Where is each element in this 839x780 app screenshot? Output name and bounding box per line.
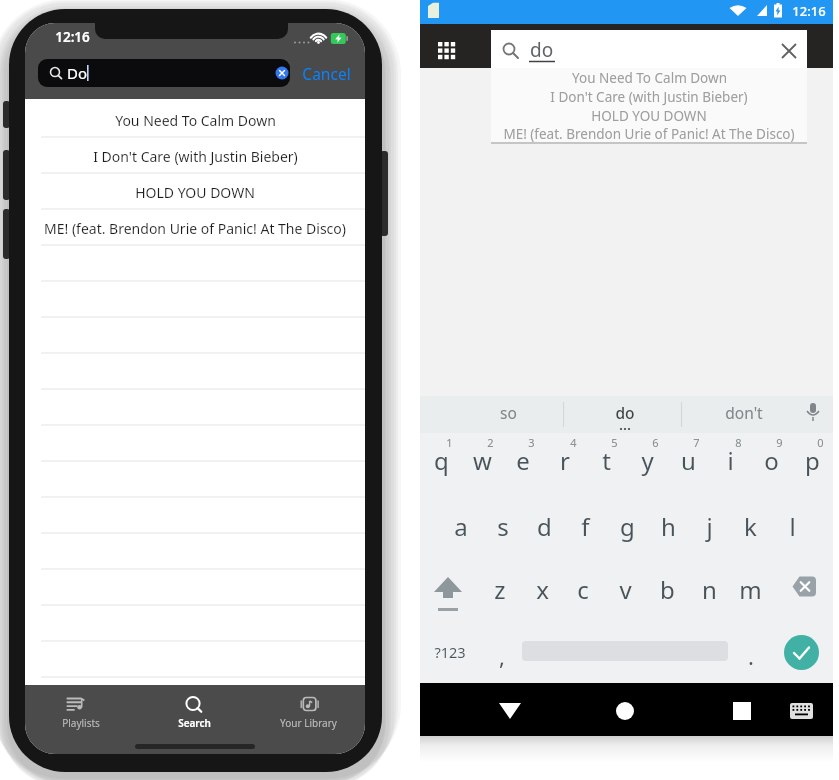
- button[interactable]: Playlists: [50, 687, 112, 733]
- button[interactable]: q: [421, 440, 461, 480]
- button[interactable]: .: [731, 636, 771, 676]
- button[interactable]: l: [772, 506, 812, 546]
- staticText: do: [615, 402, 635, 423]
- staticText: r: [560, 444, 570, 477]
- button[interactable]: HOLD YOU DOWN: [25, 176, 365, 208]
- button[interactable]: i: [710, 440, 750, 480]
- staticText: l: [789, 510, 796, 543]
- staticText: Playlists: [62, 716, 100, 730]
- button[interactable]: r: [545, 440, 585, 480]
- button[interactable]: m: [730, 569, 770, 609]
- button[interactable]: k: [730, 506, 770, 546]
- button[interactable]: HOLD YOU DOWN: [491, 107, 807, 125]
- staticText: 6: [652, 435, 659, 450]
- button[interactable]: p: [792, 440, 832, 480]
- button[interactable]: ?123: [428, 632, 472, 672]
- button[interactable]: I Don't Care (with Justin Bieber): [491, 88, 807, 106]
- staticText: 9: [776, 435, 783, 450]
- staticText: 5: [611, 435, 618, 450]
- button[interactable]: ME! (feat. Brendon Urie of Panic! At The…: [25, 212, 365, 244]
- staticText: ME! (feat. Brendon Urie of Panic! At The…: [503, 125, 795, 143]
- button[interactable]: z: [480, 569, 520, 609]
- staticText: You Need To Calm Down: [115, 111, 276, 130]
- staticText: j: [706, 510, 713, 543]
- staticText: p: [805, 444, 820, 477]
- staticText: do: [530, 37, 554, 63]
- button[interactable]: do: [595, 399, 655, 425]
- staticText: s: [497, 510, 509, 543]
- staticText: d: [537, 510, 552, 543]
- staticText: 3: [528, 435, 535, 450]
- button[interactable]: [428, 572, 468, 614]
- staticText: I Don't Care (with Justin Bieber): [93, 147, 298, 166]
- staticText: 2: [487, 435, 494, 450]
- button[interactable]: do: [491, 30, 807, 68]
- button[interactable]: g: [607, 506, 647, 546]
- staticText: a: [454, 510, 468, 543]
- staticText: don't: [725, 402, 763, 423]
- staticText: HOLD YOU DOWN: [591, 107, 707, 125]
- button[interactable]: f: [565, 506, 605, 546]
- button[interactable]: You Need To Calm Down: [25, 104, 365, 136]
- staticText: v: [619, 573, 632, 606]
- staticText: ME! (feat. Brendon Urie of Panic! At The…: [44, 219, 346, 238]
- button[interactable]: u: [668, 440, 708, 480]
- staticText: i: [727, 444, 734, 477]
- staticText: c: [577, 573, 589, 606]
- staticText: x: [536, 573, 549, 606]
- staticText: k: [744, 510, 757, 543]
- staticText: ,: [499, 641, 505, 671]
- button[interactable]: [435, 40, 459, 64]
- button[interactable]: n: [689, 569, 729, 609]
- button[interactable]: b: [647, 569, 687, 609]
- button[interactable]: You Need To Calm Down: [491, 69, 807, 87]
- button[interactable]: Do: [38, 59, 290, 87]
- button[interactable]: a: [441, 506, 481, 546]
- staticText: q: [434, 444, 449, 477]
- button[interactable]: j: [689, 506, 729, 546]
- staticText: Do: [67, 63, 88, 83]
- button[interactable]: Your Library: [274, 687, 342, 733]
- button[interactable]: don't: [710, 399, 778, 425]
- staticText: n: [702, 573, 717, 606]
- staticText: HOLD YOU DOWN: [135, 183, 255, 202]
- staticText: You Need To Calm Down: [572, 69, 727, 87]
- staticText: b: [660, 573, 675, 606]
- staticText: so: [500, 402, 517, 423]
- staticText: 4: [570, 435, 577, 450]
- button[interactable]: d: [524, 506, 564, 546]
- button[interactable]: t: [586, 440, 626, 480]
- button[interactable]: so: [478, 399, 538, 425]
- button[interactable]: w: [462, 440, 502, 480]
- button[interactable]: v: [605, 569, 645, 609]
- staticText: y: [641, 444, 654, 477]
- staticText: 7: [693, 435, 700, 450]
- staticText: 12:16: [55, 28, 90, 46]
- staticText: Your Library: [280, 716, 337, 730]
- button[interactable]: ,: [482, 636, 522, 676]
- button[interactable]: [788, 574, 820, 599]
- button[interactable]: h: [648, 506, 688, 546]
- staticText: 0: [817, 435, 824, 450]
- staticText: z: [494, 573, 506, 606]
- button[interactable]: Search: [166, 687, 222, 733]
- staticText: w: [473, 444, 492, 477]
- button[interactable]: Cancel: [297, 59, 355, 87]
- button[interactable]: ME! (feat. Brendon Urie of Panic! At The…: [491, 125, 807, 143]
- button[interactable]: [784, 635, 819, 670]
- staticText: h: [661, 510, 676, 543]
- button[interactable]: o: [751, 440, 791, 480]
- button[interactable]: e: [503, 440, 543, 480]
- staticText: 1: [446, 435, 453, 450]
- button[interactable]: I Don't Care (with Justin Bieber): [25, 140, 365, 172]
- button[interactable]: s: [483, 506, 523, 546]
- staticText: t: [602, 444, 611, 477]
- button[interactable]: y: [627, 440, 667, 480]
- staticText: 12:16: [792, 2, 826, 20]
- staticText: .: [748, 641, 754, 671]
- staticText: I Don't Care (with Justin Bieber): [550, 88, 748, 106]
- button[interactable]: c: [563, 569, 603, 609]
- staticText: o: [764, 444, 779, 477]
- button[interactable]: x: [522, 569, 562, 609]
